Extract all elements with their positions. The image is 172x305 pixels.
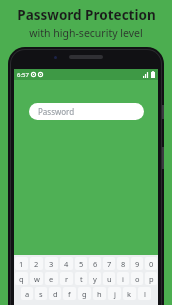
staticText: 6: [93, 259, 98, 269]
staticText: t: [80, 274, 83, 284]
staticText: with high-security level: [29, 26, 143, 40]
staticText: a: [25, 289, 30, 299]
button[interactable]: w: [30, 272, 43, 285]
staticText: f: [68, 289, 71, 299]
button[interactable]: u: [103, 272, 115, 285]
staticText: p: [149, 274, 154, 284]
staticText: 3: [49, 259, 54, 269]
button[interactable]: p: [145, 272, 157, 285]
button[interactable]: s: [35, 287, 47, 300]
button[interactable]: o: [131, 272, 143, 285]
staticText: u: [107, 274, 112, 284]
staticText: 1: [19, 259, 24, 269]
staticText: q: [19, 274, 24, 284]
button[interactable]: 1: [15, 257, 28, 270]
button[interactable]: i: [117, 272, 129, 285]
staticText: g: [82, 289, 87, 299]
button[interactable]: 3: [45, 257, 58, 270]
staticText: 9: [135, 259, 140, 269]
button[interactable]: j: [108, 287, 121, 300]
staticText: 7: [107, 259, 112, 269]
button[interactable]: l: [138, 287, 151, 300]
staticText: Password Protection: [17, 6, 156, 24]
button[interactable]: e: [45, 272, 58, 285]
staticText: 2: [34, 259, 39, 269]
button[interactable]: 4: [60, 257, 73, 270]
button[interactable]: 8: [117, 257, 129, 270]
staticText: e: [49, 274, 54, 284]
button[interactable]: r: [60, 272, 73, 285]
button[interactable]: 9: [131, 257, 143, 270]
staticText: 4: [64, 259, 69, 269]
button[interactable]: t: [75, 272, 87, 285]
button[interactable]: k: [123, 287, 136, 300]
staticText: 5: [79, 259, 84, 269]
button[interactable]: q: [15, 272, 28, 285]
staticText: 0: [149, 259, 154, 269]
staticText: 8: [121, 259, 126, 269]
button[interactable]: h: [93, 287, 106, 300]
staticText: i: [122, 274, 124, 284]
staticText: r: [65, 274, 69, 284]
button[interactable]: 6: [89, 257, 101, 270]
button[interactable]: Password: [29, 103, 144, 120]
staticText: h: [97, 289, 102, 299]
button[interactable]: g: [78, 287, 91, 300]
button[interactable]: f: [63, 287, 76, 300]
staticText: j: [114, 289, 116, 299]
staticText: Password: [38, 106, 75, 117]
staticText: 6:57: [17, 71, 29, 79]
staticText: k: [127, 289, 132, 299]
button[interactable]: 5: [75, 257, 87, 270]
staticText: d: [53, 289, 58, 299]
button[interactable]: 2: [30, 257, 43, 270]
button[interactable]: y: [89, 272, 101, 285]
button[interactable]: 0: [145, 257, 157, 270]
button[interactable]: a: [21, 287, 33, 300]
staticText: s: [39, 289, 43, 299]
button[interactable]: 7: [103, 257, 115, 270]
staticText: l: [144, 289, 146, 299]
staticText: y: [93, 274, 97, 284]
staticText: w: [34, 274, 40, 284]
button[interactable]: d: [49, 287, 61, 300]
staticText: o: [135, 274, 140, 284]
